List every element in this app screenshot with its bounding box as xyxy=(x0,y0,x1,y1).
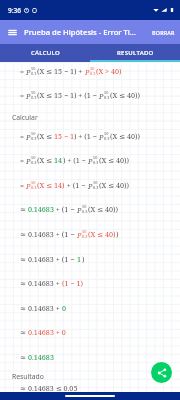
staticText: 0.14683 + 0 xyxy=(28,327,66,337)
staticText: 0.3 xyxy=(90,71,96,76)
staticText: (X ≤ 15 − 1) + (1 − xyxy=(37,90,99,100)
button[interactable]: Share xyxy=(151,362,172,383)
staticText: 50 xyxy=(104,90,109,95)
staticText: ≈ 0.14683 xyxy=(20,278,54,288)
button[interactable]: BORRAR xyxy=(147,20,180,44)
button[interactable]: CÁLCULO xyxy=(0,44,90,62)
staticText: ≈ 0.14683 xyxy=(20,303,54,313)
staticText: RESULTADO xyxy=(117,49,154,57)
staticText: P xyxy=(26,132,31,142)
staticText: (X ≤ 40)) xyxy=(110,131,141,141)
staticText: P xyxy=(77,230,82,240)
staticText: P xyxy=(85,67,90,77)
staticText: ) xyxy=(116,229,119,239)
staticText: P xyxy=(77,205,82,215)
staticText: + xyxy=(54,278,62,288)
staticText: P xyxy=(26,156,31,166)
staticText: CÁLCULO xyxy=(31,49,60,57)
staticText: 1 xyxy=(77,254,82,264)
staticText: 0.3 xyxy=(93,160,99,165)
staticText: P xyxy=(99,91,104,101)
staticText: 0 xyxy=(62,303,67,313)
staticText: (X ≤ 40)) xyxy=(99,180,130,190)
staticText: (X ≤ 15 − 1) + xyxy=(37,66,85,76)
staticText: 50 xyxy=(93,155,98,160)
staticText: + (1 − xyxy=(54,204,77,214)
staticText: 14 xyxy=(54,155,63,165)
staticText: 0.14683 xyxy=(28,204,54,214)
staticText: ≈ xyxy=(20,327,28,337)
staticText: 0.3 xyxy=(31,95,37,100)
staticText: ≈ 0.14683 xyxy=(20,254,54,264)
staticText: = xyxy=(20,66,26,76)
staticText: (X ≤ 14) xyxy=(37,180,65,190)
staticText: (X > 40) xyxy=(96,66,122,76)
staticText: 50 xyxy=(31,155,36,160)
staticText: ) + (1 − xyxy=(63,155,88,165)
staticText: P xyxy=(26,67,31,77)
staticText: 0.3 xyxy=(31,160,37,165)
staticText: 50 xyxy=(90,66,95,71)
staticText: 50 xyxy=(31,180,36,185)
staticText: 50 xyxy=(82,204,87,209)
staticText: ≈ 0.14683 xyxy=(20,229,54,239)
staticText: ) xyxy=(82,254,85,264)
staticText: 50 xyxy=(104,131,109,136)
staticText: (X ≤ 40)) xyxy=(88,204,119,214)
staticText: (X ≤ xyxy=(37,155,54,165)
staticText: (1 − 1) xyxy=(62,278,83,288)
staticText: 50 xyxy=(31,66,36,71)
staticText: 0.3 xyxy=(104,95,110,100)
staticText: = xyxy=(20,180,26,190)
staticText: P xyxy=(88,156,93,166)
staticText: (X ≤ 40)) xyxy=(110,90,141,100)
staticText: ≈ xyxy=(20,352,28,362)
staticText: + xyxy=(54,303,62,313)
staticText: 0.3 xyxy=(31,71,37,76)
staticText: (X ≤ xyxy=(37,131,54,141)
staticText: = xyxy=(20,90,26,100)
staticText: Prueba de Hipótesis - Error Ti… xyxy=(24,27,147,37)
staticText: BORRAR xyxy=(152,29,175,36)
staticText: = xyxy=(20,131,26,141)
staticText: Calcular xyxy=(12,113,38,122)
staticText: P xyxy=(26,181,31,191)
staticText: 50 xyxy=(31,90,36,95)
staticText: 0.3 xyxy=(104,136,110,141)
staticText: = xyxy=(20,155,26,165)
staticText: 15 − 1 xyxy=(54,131,74,141)
staticText: P xyxy=(88,181,93,191)
staticText: 50 xyxy=(93,180,98,185)
staticText: P xyxy=(99,132,104,142)
staticText: (X ≤ 40)) xyxy=(99,155,130,165)
staticText: Resultado xyxy=(12,372,44,381)
staticText: + (1 − xyxy=(54,229,77,239)
staticText: ≈ xyxy=(20,204,28,214)
button[interactable]: Open navigation menu xyxy=(0,20,24,44)
staticText: (X ≤ 40) xyxy=(88,229,116,239)
staticText: ≈ 0.14683 ≤ 0.05 xyxy=(20,383,78,393)
button[interactable]: RESULTADO xyxy=(90,44,180,62)
staticText: + (1 − xyxy=(54,254,77,264)
staticText: 0.14683 xyxy=(28,352,54,362)
staticText: 0.3 xyxy=(31,136,37,141)
staticText: 0.3 xyxy=(82,209,88,214)
staticText: 0.3 xyxy=(93,185,99,190)
staticText: 50 xyxy=(31,131,36,136)
staticText: 0.3 xyxy=(31,185,37,190)
staticText: ) + (1 − xyxy=(74,131,99,141)
staticText: 0.3 xyxy=(82,234,88,239)
staticText: P xyxy=(26,91,31,101)
staticText: 9:36 xyxy=(8,6,21,15)
staticText: 50 xyxy=(82,229,87,234)
staticText: + (1 − xyxy=(65,180,88,190)
